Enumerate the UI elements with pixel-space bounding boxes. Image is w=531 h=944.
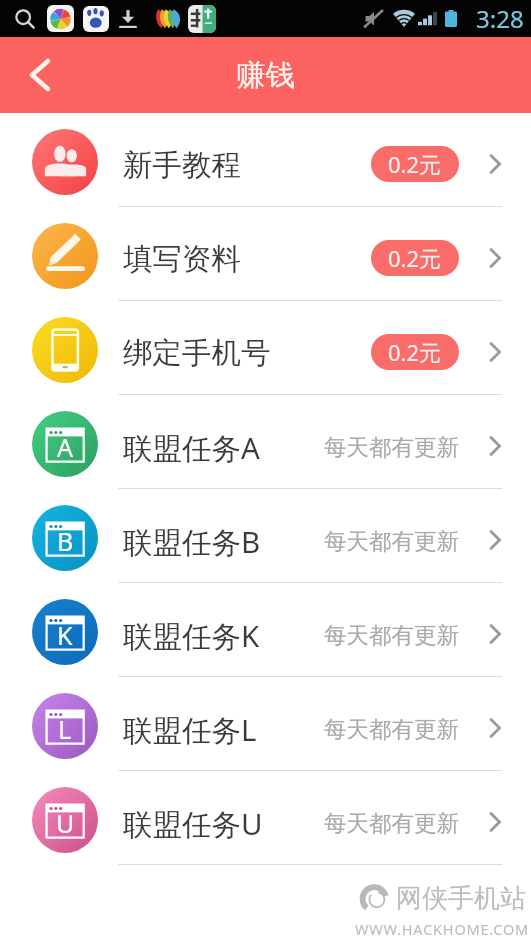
staticText: WWW.HACKHOME.COM — [355, 919, 530, 939]
staticText: 每天都有更新 — [324, 527, 459, 555]
staticText: 联盟任务U — [123, 803, 263, 843]
staticText: U — [56, 806, 75, 840]
staticText: 每天都有更新 — [324, 621, 459, 649]
staticText: 0.2元 — [388, 243, 442, 273]
staticText: 0.2元 — [388, 149, 442, 179]
staticText: 网侠手机站 — [396, 882, 526, 915]
staticText: 0.2元 — [388, 337, 442, 367]
staticText: 每天都有更新 — [324, 809, 459, 837]
staticText: 联盟任务A — [123, 427, 260, 467]
button[interactable]: K — [0, 583, 531, 677]
button[interactable]: U — [0, 771, 531, 865]
staticText: 联盟任务K — [123, 615, 260, 655]
staticText: 新手教程 — [123, 147, 241, 184]
staticText: L — [58, 712, 72, 746]
button[interactable]: 填写资料 — [0, 207, 531, 301]
staticText: 绑定手机号 — [123, 335, 271, 372]
staticText: 联盟任务B — [123, 521, 261, 561]
button[interactable]: L — [0, 677, 531, 771]
button[interactable]: Back — [8, 43, 72, 107]
staticText: 联盟任务L — [123, 709, 257, 749]
button[interactable]: 新手教程 — [0, 113, 531, 207]
staticText: B — [57, 524, 74, 558]
staticText: 3:28 — [476, 2, 524, 35]
button[interactable]: A — [0, 395, 531, 489]
button[interactable]: 绑定手机号 — [0, 301, 531, 395]
staticText: A — [57, 430, 73, 464]
staticText: 每天都有更新 — [324, 715, 459, 743]
staticText: 每天都有更新 — [324, 433, 459, 461]
staticText: K — [57, 618, 73, 652]
staticText: 填写资料 — [123, 241, 241, 278]
staticText: 赚钱 — [236, 57, 295, 94]
button[interactable]: B — [0, 489, 531, 583]
